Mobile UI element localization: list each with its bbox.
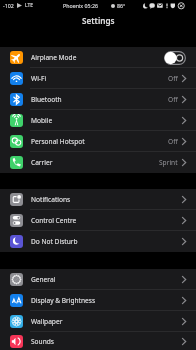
- staticText: Phoenix 05:26: [63, 2, 99, 9]
- staticText: Display & Brightness: [31, 296, 96, 305]
- staticText: Bluetooth: [31, 95, 62, 104]
- staticText: -102: [3, 2, 14, 9]
- button[interactable]: Wallpaper: [0, 311, 196, 332]
- button[interactable]: General: [0, 269, 196, 290]
- button[interactable]: Carrier: [0, 152, 196, 173]
- staticText: LTE: [25, 2, 34, 9]
- button[interactable]: Do Not Disturb: [0, 231, 196, 252]
- button[interactable]: Control Centre: [0, 210, 196, 231]
- button[interactable]: Bluetooth: [0, 89, 196, 110]
- button[interactable]: Wi-Fi: [0, 68, 196, 89]
- staticText: Carrier: [31, 158, 53, 167]
- staticText: Wallpaper: [31, 317, 63, 326]
- staticText: Control Centre: [31, 216, 77, 225]
- staticText: Wi-Fi: [31, 74, 47, 83]
- staticText: Airplane Mode: [31, 53, 77, 62]
- button[interactable]: Personal Hotspot: [0, 131, 196, 152]
- staticText: Sprint: [159, 158, 178, 167]
- staticText: 86°: [117, 2, 126, 9]
- staticText: Off: [168, 74, 178, 83]
- staticText: Notifications: [31, 195, 71, 204]
- button[interactable]: Sounds: [0, 332, 196, 350]
- staticText: Off: [168, 137, 178, 146]
- other: Airplane Mode switch: [164, 51, 186, 65]
- staticText: Sounds: [31, 337, 54, 346]
- button[interactable]: Display & Brightness: [0, 290, 196, 311]
- staticText: General: [31, 275, 56, 284]
- button[interactable]: Airplane Mode: [0, 47, 196, 68]
- button[interactable]: Mobile: [0, 110, 196, 131]
- button[interactable]: Notifications: [0, 189, 196, 210]
- staticText: Mobile: [31, 116, 53, 125]
- staticText: Off: [168, 95, 178, 104]
- staticText: Personal Hotspot: [31, 137, 85, 146]
- staticText: Do Not Disturb: [31, 237, 78, 246]
- staticText: Settings: [82, 15, 115, 26]
